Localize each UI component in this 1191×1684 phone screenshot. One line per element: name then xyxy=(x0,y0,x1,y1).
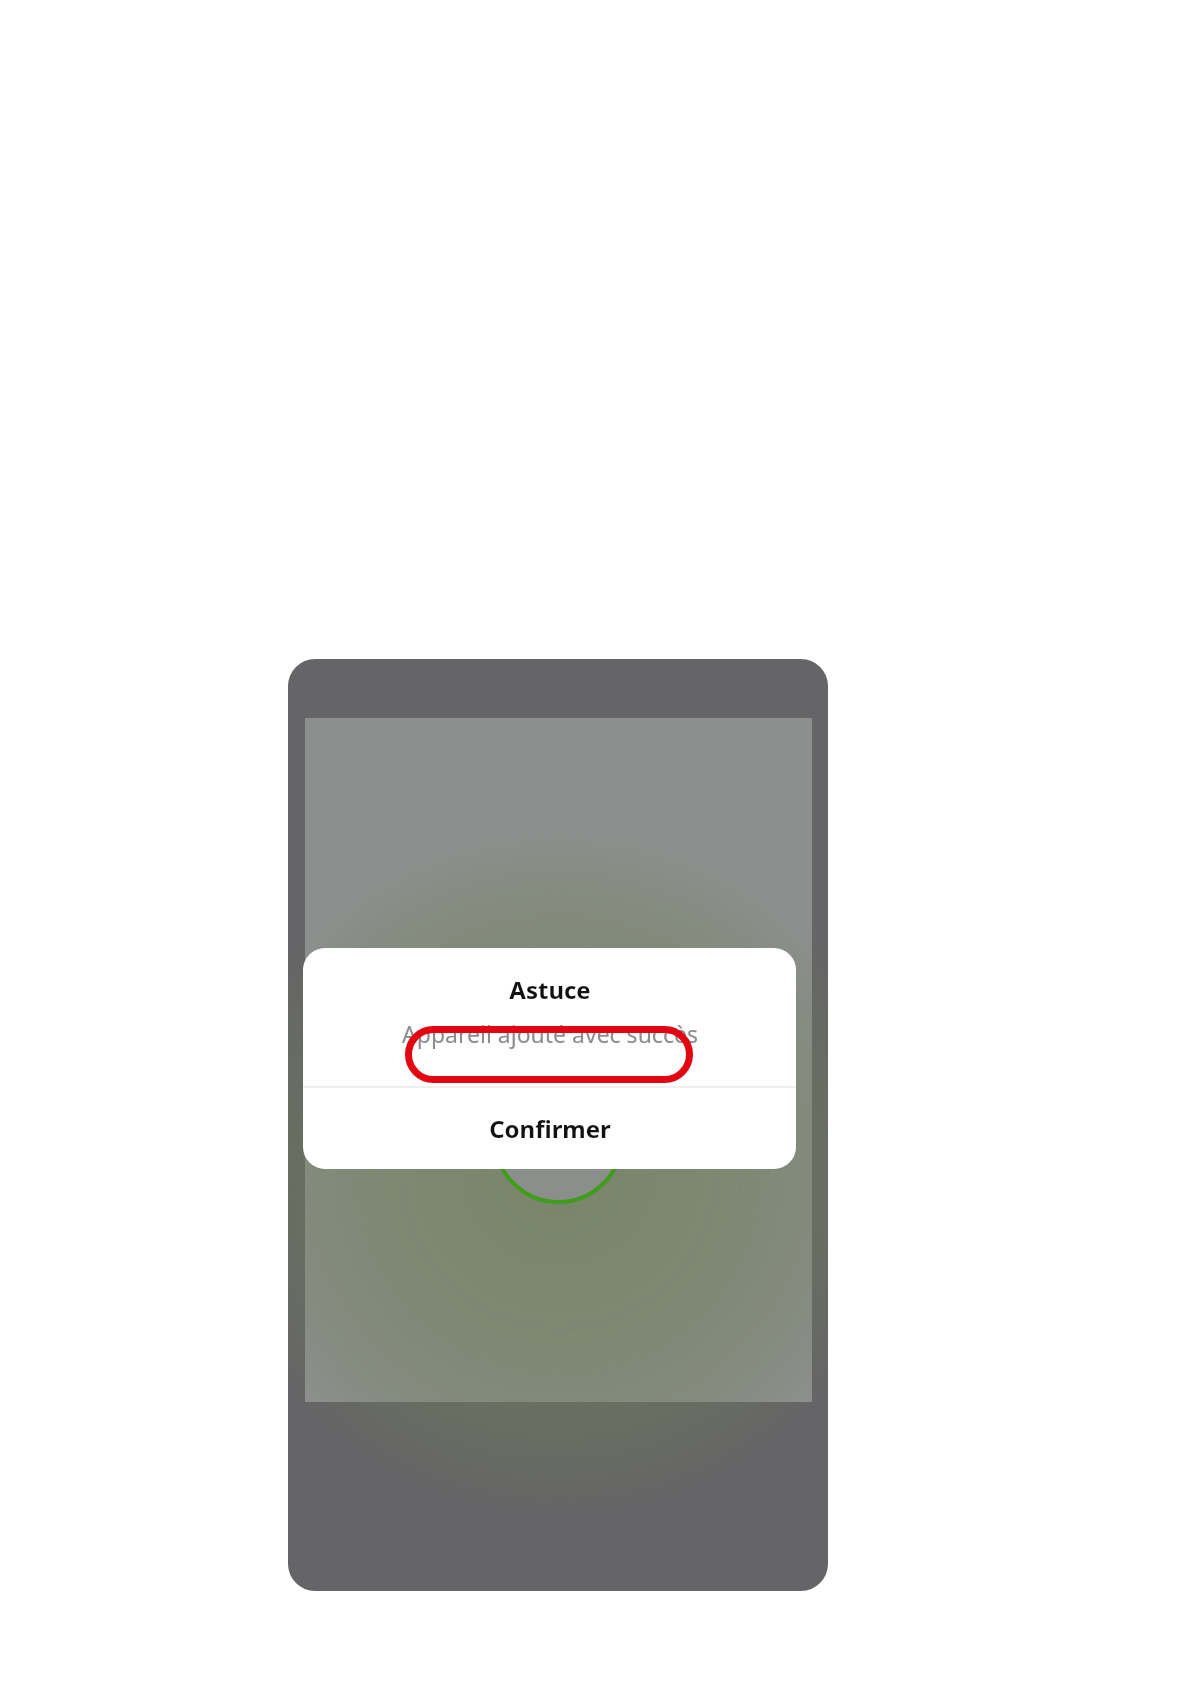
staticText: Astuce xyxy=(509,973,591,1006)
staticText: Confirmer xyxy=(489,1112,611,1145)
button[interactable]: Confirmer xyxy=(303,1088,796,1169)
other: Confirmer xyxy=(405,1026,693,1083)
staticText: Appareil ajouté avec succès xyxy=(402,1018,698,1049)
